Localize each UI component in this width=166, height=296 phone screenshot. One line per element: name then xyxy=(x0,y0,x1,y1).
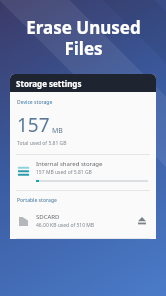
staticText: Portable storage xyxy=(17,197,57,204)
staticText: 157 MB used of 5.81 GB xyxy=(36,169,92,176)
staticText: 157 xyxy=(17,112,50,138)
staticText: Internal shared storage xyxy=(36,160,103,168)
staticText: Storage settings xyxy=(16,78,82,89)
other: Internal storage xyxy=(18,166,29,177)
staticText: Total used of 5.81 GB xyxy=(17,140,67,147)
other: SD card xyxy=(19,217,28,226)
button[interactable]: Storage settings xyxy=(10,74,156,92)
staticText: SDCARD xyxy=(36,213,60,221)
button[interactable]: Internal storage xyxy=(10,155,156,187)
staticText: Device storage xyxy=(17,99,53,106)
staticText: Erase Unused Files xyxy=(26,16,141,60)
button[interactable]: Eject SD card xyxy=(134,213,150,229)
button[interactable]: SD card xyxy=(10,211,156,231)
staticText: 46.00 KB used of 510 MB xyxy=(36,222,95,229)
staticText: MB xyxy=(52,126,63,136)
